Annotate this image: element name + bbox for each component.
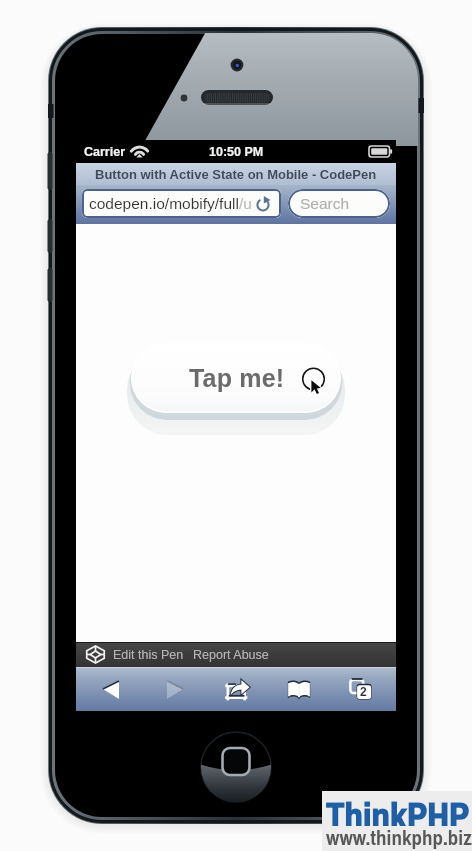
button[interactable]: Bookmarks bbox=[275, 667, 323, 711]
button[interactable]: Forward bbox=[150, 667, 198, 711]
button[interactable]: Search bbox=[288, 189, 390, 218]
button[interactable]: Back bbox=[88, 667, 136, 711]
staticText: 10:50 PM bbox=[209, 145, 264, 159]
staticText: Carrier bbox=[84, 145, 125, 159]
staticText: codepen.io/mobify/full bbox=[89, 195, 239, 212]
staticText: Tap me! bbox=[189, 364, 285, 392]
button[interactable]: Share bbox=[214, 667, 262, 711]
staticText: www.thinkphp.biz bbox=[326, 823, 472, 849]
staticText: Button with Active State on Mobile - Cod… bbox=[95, 167, 377, 182]
button[interactable]: Edit this Pen bbox=[113, 648, 184, 662]
button[interactable]: Report Abuse bbox=[193, 648, 269, 662]
button[interactable]: codepen.io/mobify/full bbox=[82, 189, 281, 218]
button[interactable]: Tabs bbox=[337, 667, 385, 711]
staticText: ThinkPHP bbox=[326, 791, 470, 826]
staticText: 2 bbox=[360, 685, 367, 698]
staticText: Search bbox=[300, 195, 350, 212]
staticText: /u bbox=[239, 195, 252, 212]
button[interactable] bbox=[131, 343, 341, 413]
